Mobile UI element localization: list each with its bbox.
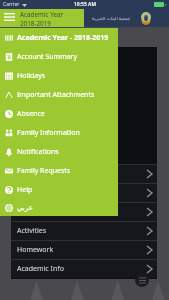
staticText: Academic Year - 2018-2019 xyxy=(17,33,109,43)
staticText: Academic Info xyxy=(17,264,64,274)
button[interactable]: Help xyxy=(0,180,118,199)
button[interactable]: Family Information xyxy=(0,123,118,142)
staticText: Carrier xyxy=(3,1,20,8)
button[interactable]: Family Requests xyxy=(0,161,118,180)
staticText: عربي xyxy=(17,204,33,212)
staticText: Help xyxy=(17,185,33,195)
staticText: 10:55 AM xyxy=(74,1,96,8)
staticText: Academic Year xyxy=(20,10,64,19)
button[interactable]: Notifications xyxy=(0,142,118,161)
staticText: Important Attachments xyxy=(17,90,95,100)
button[interactable]: Important Attachments xyxy=(0,85,118,104)
staticText: Account Summary xyxy=(17,52,78,62)
button[interactable] xyxy=(11,183,157,202)
button[interactable]: Open navigation drawer xyxy=(0,9,18,27)
button[interactable]: Homework xyxy=(11,240,157,259)
staticText: Holidays xyxy=(17,71,46,81)
staticText: Family Information xyxy=(17,128,80,138)
button[interactable]: Holidays xyxy=(0,66,118,85)
staticText: Notifications xyxy=(17,147,59,157)
staticText: Family Requests xyxy=(17,166,71,176)
button[interactable] xyxy=(11,202,157,221)
staticText: Activities xyxy=(17,226,47,236)
button[interactable]: Academic Info xyxy=(11,259,157,278)
staticText: Absence xyxy=(17,109,45,119)
button[interactable]: Absence xyxy=(0,104,118,123)
staticText: Homework xyxy=(17,245,54,255)
button[interactable] xyxy=(11,164,157,183)
button[interactable]: Academic Year - 2018-2019 xyxy=(0,28,118,47)
button[interactable]: Activities xyxy=(11,221,157,240)
button[interactable]: عربي xyxy=(0,199,118,216)
button[interactable]: More xyxy=(135,273,149,287)
staticText: 2018-2019 xyxy=(20,19,51,28)
staticText: جمعية البنات الخيرية xyxy=(92,15,131,21)
button[interactable]: Account Summary xyxy=(0,47,118,66)
